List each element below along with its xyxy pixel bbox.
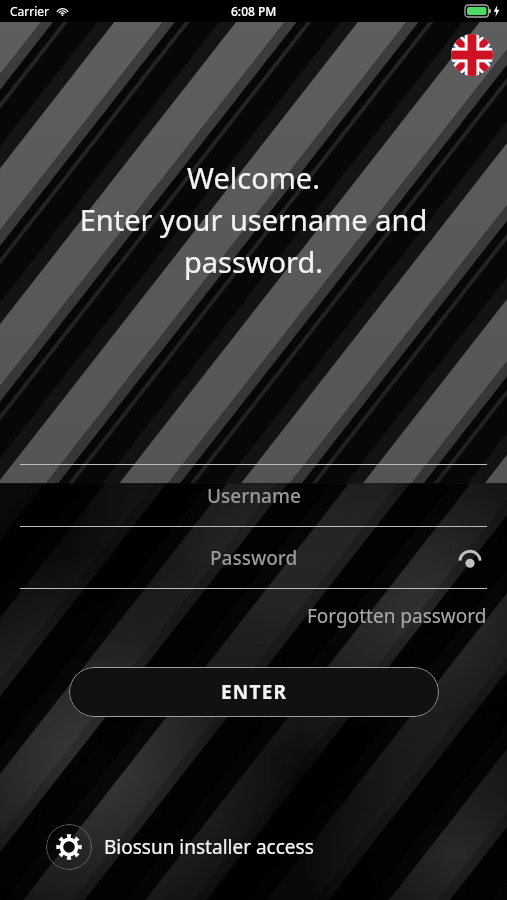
button[interactable]: Biossun installer access [46,824,324,870]
staticText: Welcome. Enter your username and passwor… [12,158,495,281]
button[interactable]: ENTER [69,667,439,717]
button[interactable]: Username [20,465,487,526]
staticText: Forgotten password [307,603,487,629]
staticText: 6:08 PM [231,3,277,19]
button[interactable]: Show password [453,541,487,575]
staticText: Password [210,545,298,571]
button[interactable]: Change language [451,34,493,76]
staticText: Carrier [10,3,50,19]
button[interactable]: Forgotten password [20,589,487,643]
staticText: ENTER [221,679,288,705]
staticText: Username [207,483,301,509]
staticText: Biossun installer access [104,834,314,860]
button[interactable]: Password [20,527,487,588]
